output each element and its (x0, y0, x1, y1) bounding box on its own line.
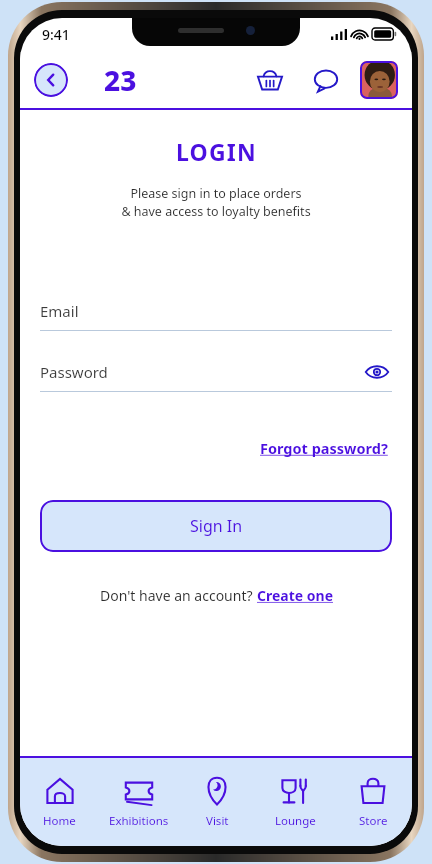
staticText: Sign In (190, 515, 243, 537)
button[interactable]: Exhibitions (99, 758, 178, 846)
button[interactable]: Profile (360, 61, 398, 99)
button[interactable]: Password (40, 353, 392, 391)
staticText: LOGIN (176, 136, 257, 167)
button[interactable]: Visit (178, 758, 256, 846)
button[interactable]: Lounge (256, 758, 334, 846)
button[interactable]: Back (34, 63, 68, 97)
staticText: Password (40, 362, 108, 382)
button[interactable]: Create one (257, 586, 333, 605)
button[interactable]: Sign In (40, 500, 392, 552)
staticText: Don't have an account? (100, 586, 257, 605)
button[interactable]: Show password (362, 357, 392, 387)
button[interactable]: Forgot password? (256, 434, 392, 462)
button[interactable]: Store (334, 758, 412, 846)
staticText: 9:41 (42, 25, 70, 44)
button[interactable]: Home (20, 758, 99, 846)
button[interactable]: Basket (250, 60, 290, 100)
staticText: Home (43, 813, 76, 829)
staticText: Store (359, 813, 388, 829)
button[interactable]: Messages (306, 60, 346, 100)
staticText: Email (40, 301, 79, 321)
staticText: Lounge (275, 813, 316, 829)
staticText: Exhibitions (109, 813, 169, 829)
staticText: 23 (104, 61, 137, 99)
staticText: Please sign in to place orders & have ac… (121, 185, 311, 220)
button[interactable]: Email (40, 292, 392, 331)
staticText: Visit (206, 813, 229, 829)
